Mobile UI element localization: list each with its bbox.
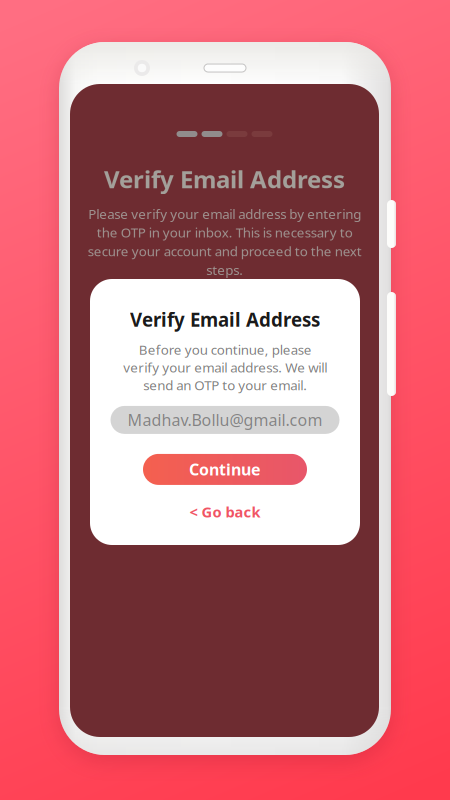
button[interactable]: < Go back [170, 502, 280, 522]
staticText: Verify Email Address [104, 163, 345, 195]
staticText: Verify Email Address [130, 307, 320, 332]
button[interactable]: Madhav.Bollu@gmail.com [110, 406, 339, 434]
button[interactable]: Step 3 [226, 131, 247, 137]
staticText: Before you continue, please verify your … [123, 341, 327, 394]
staticText: Madhav.Bollu@gmail.com [127, 409, 322, 430]
button[interactable]: Step 1, completed [176, 131, 197, 137]
staticText: < Go back [189, 502, 260, 522]
button[interactable]: Step 2, current [201, 131, 222, 137]
button[interactable]: Continue [143, 454, 307, 485]
staticText: Please verify your email address by ente… [87, 205, 361, 279]
staticText: Continue [189, 459, 261, 480]
